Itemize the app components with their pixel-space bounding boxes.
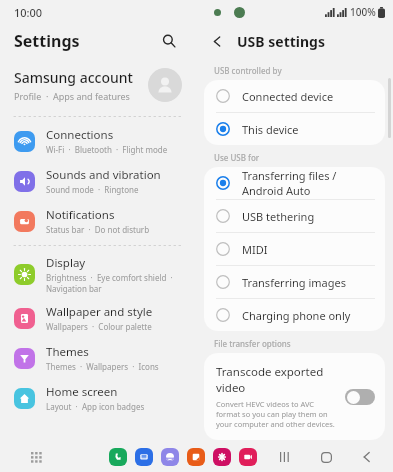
staticText: 10:00 bbox=[14, 5, 43, 20]
button[interactable]: Notes bbox=[187, 448, 205, 466]
staticText: Themes bbox=[46, 344, 89, 360]
staticText: Transferring images bbox=[242, 275, 346, 290]
button[interactable]: This device bbox=[204, 113, 385, 145]
button[interactable]: Charging phone only bbox=[204, 299, 385, 331]
staticText: Wallpapers · Colour palette bbox=[46, 321, 152, 332]
button[interactable]: Search bbox=[156, 28, 182, 54]
button[interactable]: Recents bbox=[275, 447, 295, 467]
button[interactable]: Video bbox=[239, 448, 257, 466]
staticText: Wallpaper and style bbox=[46, 304, 153, 320]
staticText: This device bbox=[242, 122, 299, 137]
staticText: Notifications bbox=[46, 207, 115, 223]
staticText: Transferring files / Android Auto bbox=[242, 168, 373, 198]
button[interactable]: Back bbox=[357, 447, 377, 467]
button[interactable]: Home bbox=[316, 447, 336, 467]
button[interactable]: Phone bbox=[109, 448, 127, 466]
staticText: USB settings bbox=[237, 32, 325, 51]
staticText: Home screen bbox=[46, 384, 118, 400]
button[interactable]: Back bbox=[206, 30, 228, 52]
staticText: Connections bbox=[46, 127, 114, 143]
button[interactable]: USB tethering bbox=[204, 200, 385, 232]
button[interactable]: Transcode exported video toggle bbox=[345, 389, 375, 405]
staticText: Status bar · Do not disturb bbox=[46, 224, 150, 235]
button[interactable]: Connected device bbox=[204, 80, 385, 112]
staticText: USB tethering bbox=[242, 209, 315, 224]
staticText: Convert HEVC videos to AVC format so you… bbox=[216, 399, 337, 429]
button[interactable]: Themes bbox=[0, 338, 196, 378]
button[interactable]: Sounds and vibration bbox=[0, 161, 196, 201]
staticText: Connected device bbox=[242, 89, 334, 104]
staticText: Sound mode · Ringtone bbox=[46, 184, 139, 195]
staticText: Brightness · Eye comfort shield · bbox=[46, 272, 173, 283]
button[interactable]: MIDI bbox=[204, 233, 385, 265]
staticText: Layout · App icon badges bbox=[46, 401, 145, 412]
staticText: Samsung account bbox=[14, 68, 133, 87]
button[interactable]: Transferring images bbox=[204, 266, 385, 298]
button[interactable]: Transferring files / Android Auto bbox=[204, 167, 385, 199]
staticText: MIDI bbox=[242, 242, 268, 257]
staticText: Use USB for bbox=[214, 152, 260, 163]
button[interactable]: Transcode exported video bbox=[204, 353, 385, 440]
button[interactable]: Samsung account bbox=[0, 58, 196, 112]
button[interactable]: Connections bbox=[0, 121, 196, 161]
staticText: Navigation bar bbox=[46, 283, 102, 294]
staticText: Wi-Fi · Bluetooth · Flight mode bbox=[46, 144, 168, 155]
button[interactable]: Messages bbox=[135, 448, 153, 466]
button[interactable]: Wallpaper and style bbox=[0, 298, 196, 338]
button[interactable]: Internet bbox=[161, 448, 179, 466]
staticText: 100% bbox=[350, 5, 376, 19]
staticText: Charging phone only bbox=[242, 308, 351, 323]
staticText: USB controlled by bbox=[214, 65, 282, 76]
button[interactable]: Home screen bbox=[0, 378, 196, 418]
staticText: Sounds and vibration bbox=[46, 167, 161, 183]
button[interactable]: Display bbox=[0, 250, 196, 298]
staticText: Settings bbox=[14, 30, 80, 52]
button[interactable]: Notifications bbox=[0, 201, 196, 241]
staticText: File transfer options bbox=[214, 338, 291, 349]
button[interactable]: Galaxy Store bbox=[213, 448, 231, 466]
staticText: Display bbox=[46, 255, 86, 271]
staticText: Themes · Wallpapers · Icons bbox=[46, 361, 159, 372]
button[interactable]: Apps bbox=[26, 447, 46, 467]
staticText: Profile · Apps and features bbox=[14, 90, 130, 102]
staticText: Transcode exported video bbox=[216, 364, 337, 396]
